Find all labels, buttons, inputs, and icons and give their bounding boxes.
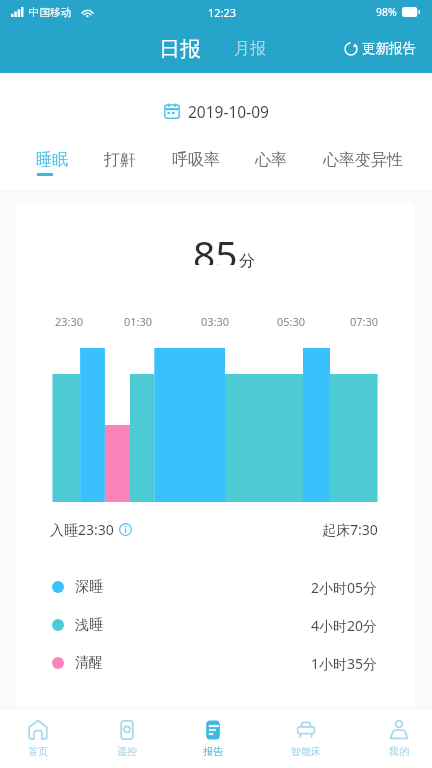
button[interactable]: 日报 [153, 31, 207, 67]
staticText: 首页 [28, 745, 48, 758]
staticText: 07:30 [350, 314, 379, 328]
button[interactable]: 智能床 [263, 710, 349, 768]
button[interactable]: 2019-10-09 [0, 73, 432, 149]
button[interactable]: 呼吸率 [164, 149, 228, 190]
staticText: 报告 [203, 745, 223, 758]
staticText: 浅睡 [75, 616, 103, 634]
staticText: 心率 [255, 150, 287, 170]
staticText: 12:23 [208, 5, 237, 20]
staticText: 中国移动 [29, 6, 71, 19]
button[interactable]: 遥控 [84, 710, 170, 768]
button[interactable]: 月报 [228, 34, 272, 64]
staticText: 分 [239, 251, 255, 271]
button[interactable]: 我的 [356, 710, 432, 768]
staticText: 深睡 [75, 578, 103, 596]
staticText: 月报 [234, 39, 266, 59]
staticText: 我的 [389, 745, 409, 758]
staticText: 心率变异性 [323, 150, 403, 170]
staticText: 入睡23:30 [50, 520, 114, 539]
staticText: 03:30 [201, 314, 230, 328]
button[interactable]: 首页 [0, 710, 81, 768]
staticText: 起床7:30 [322, 520, 378, 539]
staticText: 睡眠 [36, 150, 68, 170]
button[interactable]: 心率变异性 [315, 149, 411, 190]
button[interactable]: 心率 [247, 149, 295, 190]
staticText: 呼吸率 [172, 150, 220, 170]
staticText: 85 [193, 227, 238, 265]
staticText: 遥控 [117, 745, 137, 758]
button[interactable]: 打鼾 [96, 149, 144, 190]
staticText: 智能床 [291, 745, 321, 758]
staticText: 98% [376, 5, 397, 19]
staticText: 打鼾 [104, 150, 136, 170]
button[interactable]: Sleep onset info [119, 523, 132, 536]
staticText: 清醒 [75, 654, 103, 672]
staticText: 01:30 [124, 314, 153, 328]
staticText: 更新报告 [362, 40, 416, 57]
button[interactable]: 更新报告 [344, 35, 416, 62]
button[interactable]: 睡眠 [28, 149, 76, 190]
staticText: 2019-10-09 [188, 101, 269, 122]
staticText: 1小时35分 [311, 654, 378, 673]
staticText: 2小时05分 [311, 578, 378, 597]
staticText: 23:30 [55, 314, 84, 328]
staticText: 05:30 [277, 314, 306, 328]
staticText: 4小时20分 [311, 616, 378, 635]
button[interactable]: 报告 [170, 710, 256, 768]
staticText: 日报 [159, 36, 201, 62]
